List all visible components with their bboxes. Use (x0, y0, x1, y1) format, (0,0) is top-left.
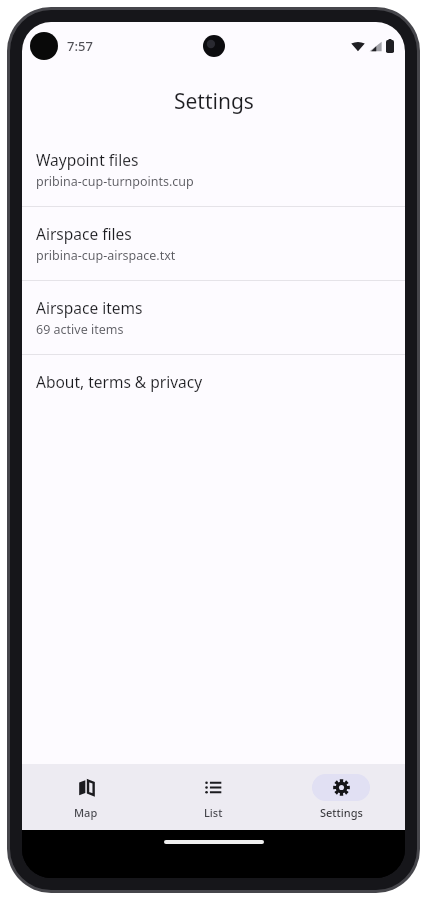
staticText: 69 active items (36, 321, 124, 338)
staticText: pribina-cup-airspace.txt (36, 247, 176, 264)
button[interactable]: Waypoint files (22, 133, 405, 206)
button[interactable]: Airspace files (22, 207, 405, 280)
button[interactable]: Map (22, 768, 149, 826)
staticText: About, terms & privacy (36, 371, 203, 392)
staticText: Settings (320, 805, 363, 820)
staticText: Map (74, 805, 98, 820)
staticText: 7:57 (67, 37, 93, 55)
staticText: Airspace files (36, 223, 132, 244)
button[interactable]: List (149, 768, 277, 826)
button[interactable]: Settings (277, 768, 405, 826)
button[interactable]: Airspace items (22, 281, 405, 354)
staticText: Waypoint files (36, 149, 139, 170)
staticText: List (204, 805, 223, 820)
staticText: pribina-cup-turnpoints.cup (36, 173, 194, 190)
button[interactable]: About, terms & privacy (22, 355, 405, 408)
staticText: Airspace items (36, 297, 143, 318)
staticText: Settings (174, 87, 254, 116)
